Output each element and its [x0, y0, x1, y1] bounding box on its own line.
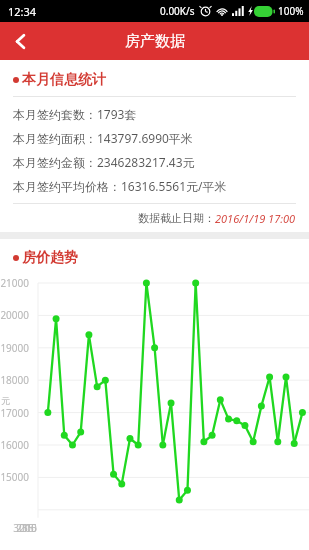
- button[interactable]: 本月签约面积：143797.6990平米: [0, 126, 309, 150]
- staticText: 20000: [0, 308, 29, 322]
- staticText: 19000: [0, 341, 29, 355]
- staticText: 本月信息统计: [22, 71, 106, 89]
- staticText: 100%: [278, 4, 304, 18]
- staticText: 0.00K/s: [160, 4, 195, 18]
- button[interactable]: 本月签约金额：2346283217.43元: [0, 150, 309, 174]
- staticText: 15: [22, 521, 34, 535]
- staticText: 10: [25, 521, 37, 535]
- staticText: 30: [13, 521, 25, 535]
- button[interactable]: 本月签约套数：1793套: [0, 102, 309, 126]
- staticText: 数据截止日期：: [138, 211, 215, 225]
- staticText: 2016/1/19 17:00: [215, 211, 296, 226]
- staticText: 本月签约套数：1793套: [13, 106, 137, 122]
- staticText: 16000: [0, 438, 29, 452]
- button[interactable]: 本月信息统计: [13, 71, 309, 89]
- staticText: 21000: [0, 276, 29, 290]
- staticText: 25: [16, 521, 28, 535]
- staticText: 12:34: [8, 4, 37, 19]
- staticText: 房价趋势: [22, 249, 78, 267]
- button[interactable]: 本月签约平均价格：16316.5561元/平米: [0, 174, 309, 198]
- button[interactable]: Back: [0, 22, 40, 60]
- staticText: 房产数据: [125, 32, 185, 51]
- staticText: 元: [1, 395, 10, 406]
- staticText: 18000: [0, 373, 29, 387]
- staticText: 20: [19, 521, 31, 535]
- staticText: 17000: [0, 406, 29, 420]
- staticText: 5: [31, 521, 37, 535]
- staticText: 本月签约面积：143797.6990平米: [13, 130, 193, 146]
- staticText: 15000: [0, 470, 29, 484]
- staticText: 本月签约平均价格：16316.5561元/平米: [13, 178, 227, 194]
- staticText: 本月签约金额：2346283217.43元: [13, 154, 195, 170]
- button[interactable]: 房价趋势: [13, 249, 309, 267]
